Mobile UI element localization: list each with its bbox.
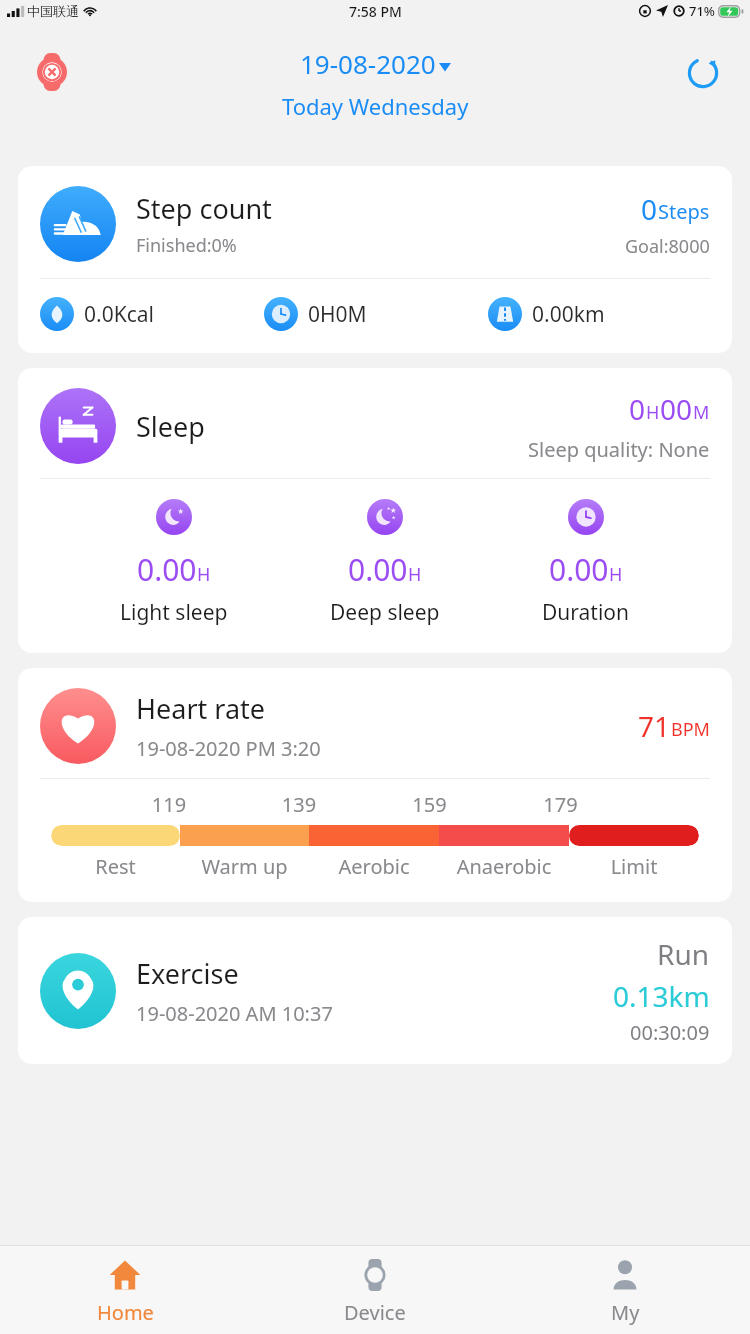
button[interactable]: My (500, 1246, 750, 1334)
button[interactable]: Exercise (18, 917, 732, 1064)
button[interactable]: Heart rate (18, 668, 732, 902)
staticText: Goal:8000 (625, 234, 710, 259)
staticText: 71 (638, 707, 671, 745)
button[interactable]: Sleep (18, 368, 732, 653)
staticText: 0.00 (137, 549, 197, 590)
button[interactable]: 19-08-2020 (294, 44, 457, 83)
staticText: Sleep (136, 408, 528, 445)
staticText: 00 (660, 390, 693, 428)
staticText: Aerobic (309, 853, 439, 880)
staticText: H (646, 400, 660, 425)
staticText: 0H0M (308, 300, 367, 329)
staticText: BPM (671, 717, 710, 742)
staticText: Light sleep (120, 598, 228, 627)
staticText: Device (344, 1299, 406, 1326)
staticText: Warm up (180, 853, 309, 880)
staticText: Finished:0% (136, 233, 237, 258)
staticText: H (408, 562, 422, 587)
staticText: H (609, 562, 623, 587)
staticText: 119 (104, 791, 234, 818)
staticText: 19-08-2020 (300, 46, 436, 81)
button[interactable]: Step count (18, 166, 732, 353)
button[interactable]: Device (250, 1246, 500, 1334)
staticText: 0 (629, 390, 646, 428)
staticText: 0.13km (613, 977, 710, 1015)
staticText: 中国联通 (27, 3, 79, 19)
staticText: Steps (658, 198, 710, 225)
staticText: Run (657, 935, 710, 973)
staticText: 71% (689, 2, 715, 20)
staticText: 159 (364, 791, 495, 818)
staticText: 0.00 (549, 549, 609, 590)
staticText: Today Wednesday (282, 91, 469, 121)
staticText: 0.0Kcal (84, 300, 154, 329)
staticText: Heart rate (136, 690, 266, 727)
staticText: Exercise (136, 955, 239, 992)
staticText: H (197, 562, 211, 587)
staticText: 179 (495, 791, 626, 818)
staticText: Home (97, 1299, 154, 1326)
staticText: 19-08-2020 PM 3:20 (136, 735, 321, 762)
staticText: 0 (641, 190, 658, 228)
staticText: 0.00km (532, 300, 605, 329)
staticText: Sleep quality: None (528, 436, 710, 463)
staticText: Anaerobic (439, 853, 569, 880)
staticText: Rest (51, 853, 180, 880)
button[interactable]: Device disconnected (28, 48, 76, 96)
button[interactable]: Home (0, 1246, 250, 1334)
staticText: Deep sleep (330, 598, 440, 627)
staticText: Step count (136, 190, 272, 227)
staticText: 0.00 (348, 549, 408, 590)
staticText: Limit (569, 853, 699, 880)
staticText: 00:30:09 (630, 1019, 710, 1046)
staticText: 19-08-2020 AM 10:37 (136, 1000, 333, 1027)
staticText: 7:58 PM (349, 2, 402, 21)
button[interactable]: Refresh (680, 50, 726, 96)
staticText: Duration (542, 598, 630, 627)
staticText: M (693, 400, 710, 425)
staticText: 139 (234, 791, 364, 818)
staticText: My (611, 1299, 640, 1326)
